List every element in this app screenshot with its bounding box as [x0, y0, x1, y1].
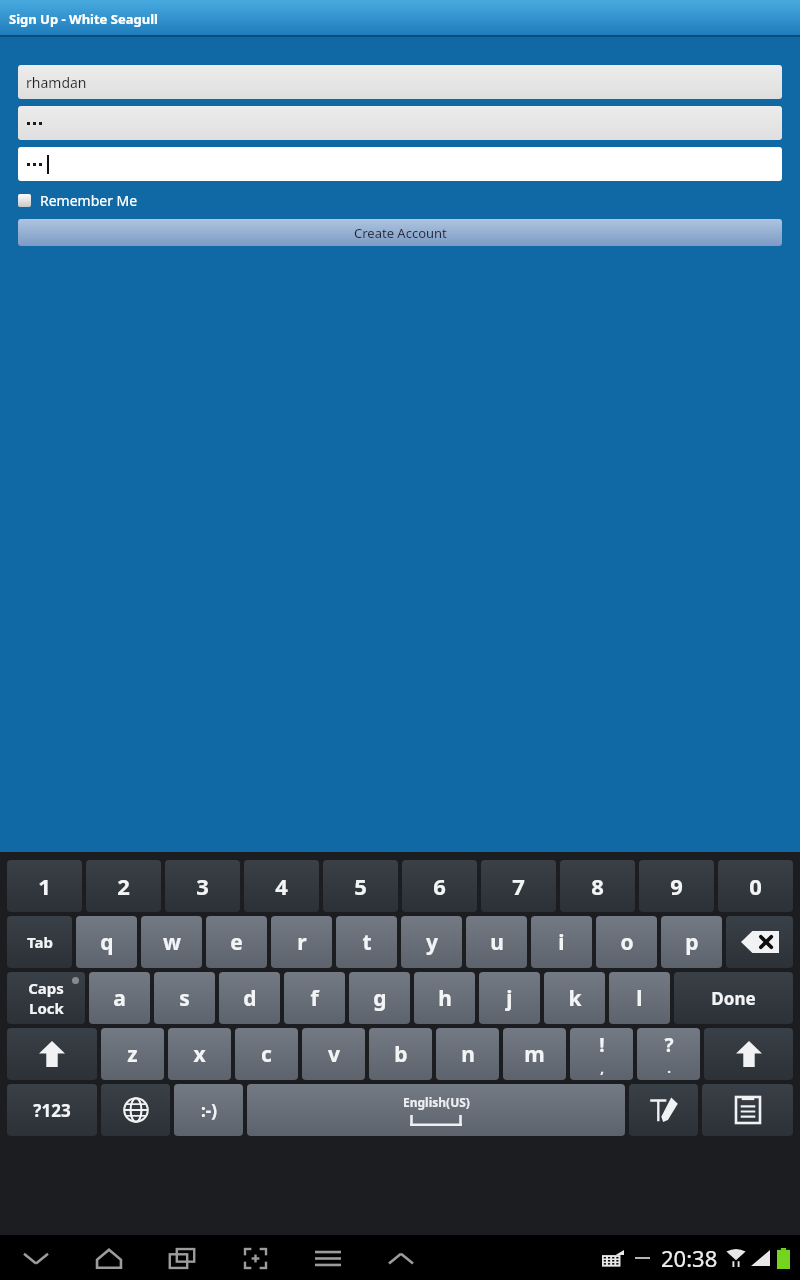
button[interactable]: 4	[244, 860, 319, 912]
button[interactable]: 1	[7, 860, 82, 912]
button[interactable]: w	[141, 916, 202, 968]
staticText: 2	[117, 871, 130, 901]
button[interactable]: a	[89, 972, 150, 1024]
button[interactable]: i	[531, 916, 592, 968]
button[interactable]: g	[349, 972, 410, 1024]
staticText: English(US)	[403, 1094, 470, 1110]
button[interactable]: n	[436, 1028, 499, 1080]
button[interactable]: !	[570, 1028, 633, 1080]
button[interactable]: Home	[89, 1238, 129, 1278]
staticText: e	[230, 928, 243, 957]
staticText: Tab	[27, 932, 53, 952]
button[interactable]: Emoticons	[174, 1084, 243, 1136]
button[interactable]: Tab	[7, 916, 72, 968]
staticText: m	[524, 1040, 545, 1069]
button[interactable]: f	[284, 972, 345, 1024]
button[interactable]: rhamdan	[18, 65, 782, 99]
staticText: Create Account	[354, 224, 447, 242]
button[interactable]: b	[369, 1028, 432, 1080]
button[interactable]: h	[414, 972, 475, 1024]
button[interactable]: m	[503, 1028, 566, 1080]
button[interactable]: Clipboard	[702, 1084, 793, 1136]
button[interactable]: 8	[560, 860, 635, 912]
button[interactable]: q	[76, 916, 137, 968]
button[interactable]: Create Account	[18, 219, 782, 246]
staticText: r	[297, 928, 307, 957]
button[interactable]: y	[401, 916, 462, 968]
staticText: g	[373, 984, 387, 1013]
staticText: t	[362, 928, 372, 957]
button[interactable]: Shift	[7, 1028, 97, 1080]
staticText: 9	[670, 871, 683, 901]
button[interactable]: Remember Me	[18, 188, 138, 213]
button[interactable]: Shift	[704, 1028, 793, 1080]
button[interactable]: o	[596, 916, 657, 968]
button[interactable]: 7	[481, 860, 556, 912]
staticText: w	[163, 928, 181, 957]
button[interactable]: Handwriting	[629, 1084, 698, 1136]
button[interactable]: Recent apps	[162, 1238, 202, 1278]
staticText: v	[328, 1040, 340, 1069]
button[interactable]: u	[466, 916, 527, 968]
staticText: l	[636, 984, 643, 1013]
button[interactable]: Change language	[101, 1084, 170, 1136]
staticText: rhamdan	[26, 73, 87, 92]
button[interactable]: r	[271, 916, 332, 968]
button[interactable]: Done	[674, 972, 793, 1024]
button[interactable]: p	[661, 916, 722, 968]
staticText: 6	[433, 871, 446, 901]
button[interactable]: x	[168, 1028, 231, 1080]
button[interactable]: ?123	[7, 1084, 97, 1136]
button[interactable]: Caps Lock	[7, 972, 85, 1024]
button[interactable]: s	[154, 972, 215, 1024]
staticText: s	[179, 984, 190, 1013]
staticText: i	[558, 928, 565, 957]
staticText: 5	[354, 871, 367, 901]
button[interactable]: k	[544, 972, 605, 1024]
staticText: .	[667, 1059, 671, 1077]
button[interactable]: Backspace	[726, 916, 793, 968]
staticText: 3	[196, 871, 209, 901]
staticText: p	[685, 928, 699, 957]
staticText: !	[599, 1032, 605, 1058]
button[interactable]: Expand	[381, 1238, 421, 1278]
button[interactable]: t	[336, 916, 397, 968]
button[interactable]: Space	[247, 1084, 625, 1136]
button[interactable]: 9	[639, 860, 714, 912]
staticText: 1	[38, 871, 51, 901]
staticText: ?	[664, 1032, 674, 1058]
button[interactable]: Menu	[308, 1238, 348, 1278]
staticText: q	[100, 928, 114, 957]
button[interactable]: v	[302, 1028, 365, 1080]
button[interactable]: 5	[323, 860, 398, 912]
button[interactable]: e	[206, 916, 267, 968]
staticText: y	[426, 928, 438, 957]
button[interactable]: j	[479, 972, 540, 1024]
staticText: 0	[749, 871, 762, 901]
button[interactable]: l	[609, 972, 670, 1024]
staticText: x	[193, 1040, 206, 1069]
button[interactable]: c	[235, 1028, 298, 1080]
staticText: n	[461, 1040, 475, 1069]
staticText: 7	[512, 871, 525, 901]
staticText: 20:38	[661, 1243, 718, 1273]
button[interactable]: 3	[165, 860, 240, 912]
button[interactable]: z	[101, 1028, 164, 1080]
staticText: Lock	[29, 998, 64, 1018]
staticText: ,	[600, 1059, 604, 1077]
button[interactable]: d	[219, 972, 280, 1024]
staticText: Remember Me	[40, 191, 138, 210]
staticText: f	[310, 984, 319, 1013]
staticText: Sign Up - White Seagull	[9, 10, 158, 28]
button[interactable]: 0	[718, 860, 793, 912]
button[interactable]: 6	[402, 860, 477, 912]
staticText: d	[243, 984, 257, 1013]
button[interactable]	[18, 147, 782, 181]
staticText: j	[506, 984, 513, 1013]
button[interactable]: Screenshot	[235, 1238, 275, 1278]
button[interactable]: ?	[637, 1028, 700, 1080]
staticText: ?123	[33, 1099, 71, 1122]
button[interactable]: 2	[86, 860, 161, 912]
button[interactable]: Hide keyboard	[16, 1238, 56, 1278]
button[interactable]	[18, 106, 782, 140]
